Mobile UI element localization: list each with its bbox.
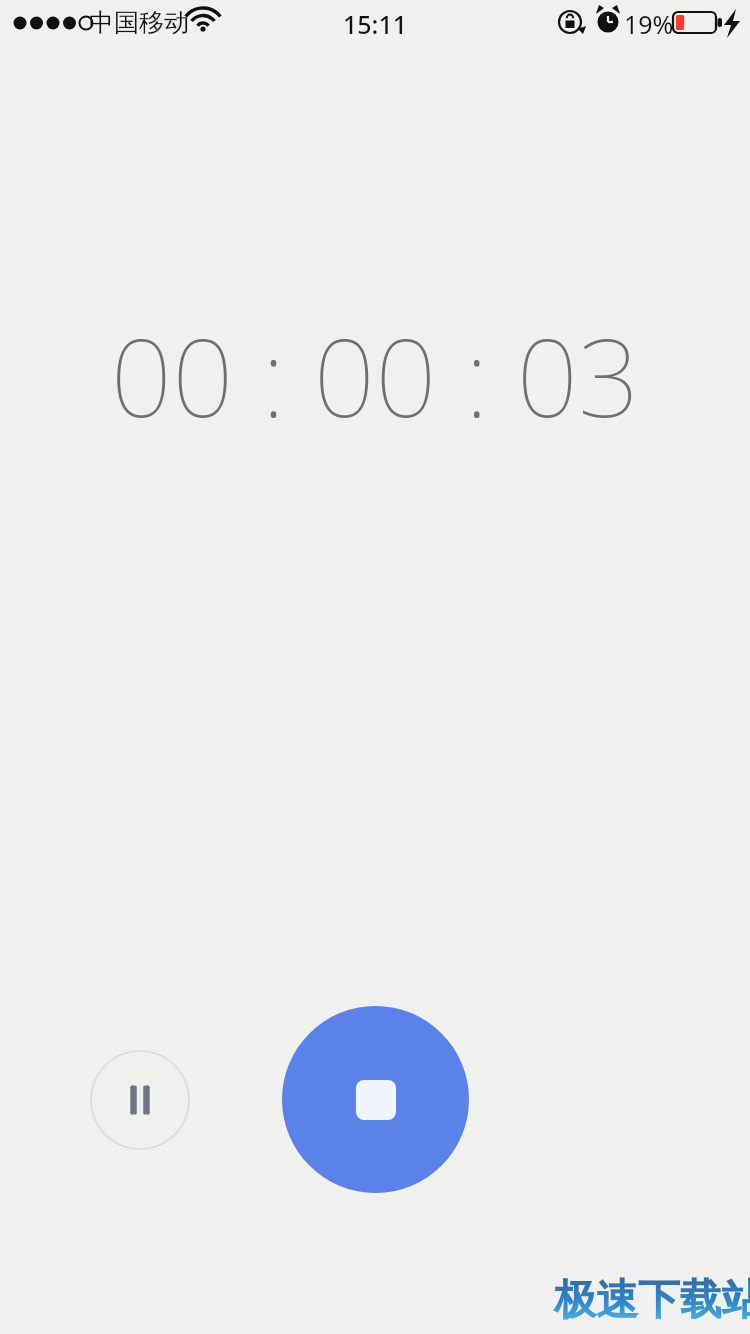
staticText: 19% [624, 7, 674, 41]
button[interactable]: Pause [90, 1050, 190, 1150]
staticText: 极速下载站 [554, 1274, 750, 1327]
staticText: 15:11 [343, 7, 408, 41]
staticText: 00 : 00 : 03 [0, 302, 750, 1334]
button[interactable]: Stop [282, 1006, 469, 1193]
staticText: 中国移动 [89, 7, 189, 38]
